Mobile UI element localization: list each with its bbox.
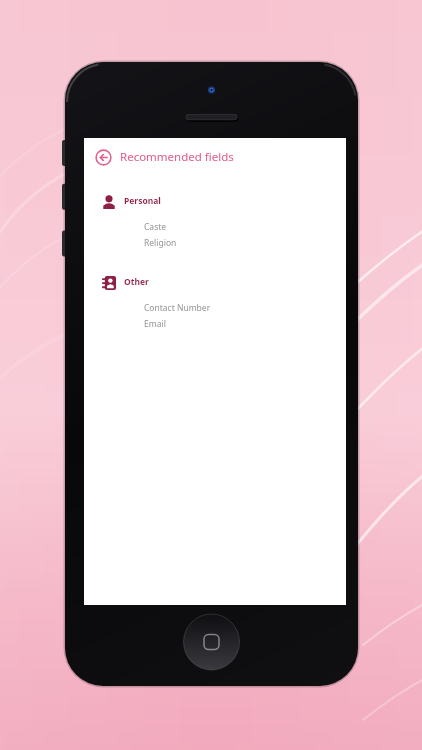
button[interactable]: Personal <box>84 191 346 211</box>
button[interactable]: Back <box>93 147 113 167</box>
button[interactable]: Religion <box>84 235 346 251</box>
button[interactable]: Other <box>84 272 346 292</box>
staticText: Personal <box>124 195 161 207</box>
button[interactable]: Email <box>84 316 346 332</box>
staticText: Contact Number <box>144 302 211 314</box>
staticText: Email <box>144 318 166 330</box>
button[interactable]: Caste <box>84 219 346 235</box>
button[interactable]: Contact Number <box>84 300 346 316</box>
staticText: Caste <box>144 221 167 233</box>
staticText: Other <box>124 276 149 288</box>
staticText: Religion <box>144 237 177 249</box>
staticText: Recommended fields <box>120 149 234 165</box>
